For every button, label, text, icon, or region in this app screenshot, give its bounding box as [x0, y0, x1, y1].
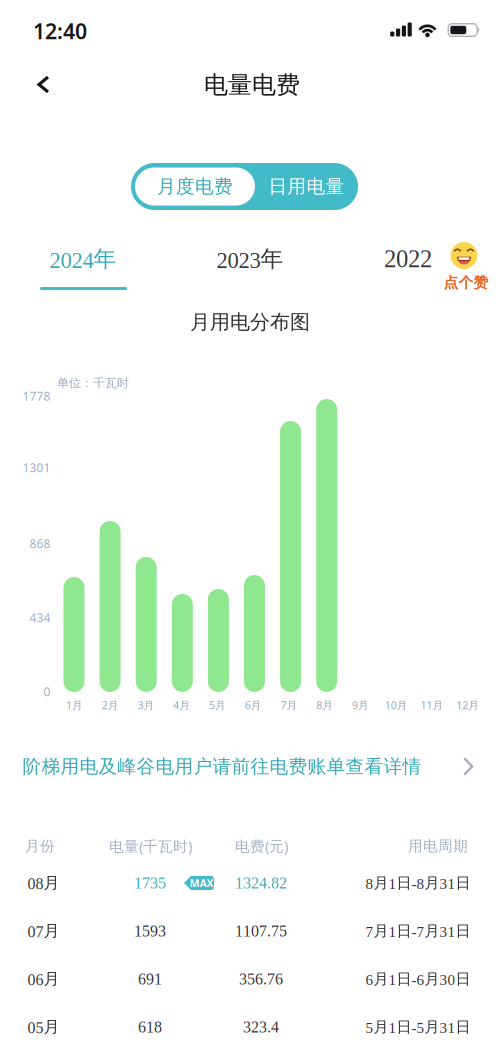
button[interactable]: 2024年 [49, 245, 116, 273]
staticText: 电费(元) [235, 836, 288, 856]
staticText: 434 [29, 609, 50, 625]
staticText: 07月 [27, 921, 59, 941]
staticText: 691 [138, 970, 162, 988]
staticText: 6月1日-6月30日 [365, 969, 470, 988]
staticText: 8月1日-8月31日 [365, 873, 470, 892]
staticText: 06月 [27, 969, 59, 989]
staticText: 点个赞 [443, 273, 488, 291]
staticText: 月度电费 [157, 175, 233, 198]
staticText: 用电周期 [408, 837, 468, 855]
staticText: 1735 [134, 874, 166, 892]
button[interactable]: 2023年 [216, 245, 283, 273]
staticText: 0 [43, 683, 50, 699]
staticText: 1593 [134, 922, 166, 940]
staticText: 3月 [137, 698, 154, 712]
staticText: 323.4 [243, 1018, 279, 1036]
staticText: 日用电量 [268, 175, 344, 198]
staticText: 868 [29, 535, 50, 551]
button[interactable] [131, 163, 358, 210]
staticText: 6月 [245, 698, 262, 712]
staticText: 月用电分布图 [190, 310, 310, 334]
staticText: 1107.75 [235, 922, 287, 940]
staticText: 356.76 [239, 970, 283, 988]
staticText: 1324.82 [235, 874, 287, 892]
button[interactable]: 月度电费 [135, 167, 255, 205]
staticText: 4月 [173, 698, 190, 712]
staticText: 1778 [22, 388, 50, 404]
staticText: 618 [138, 1018, 162, 1036]
staticText: 电量(千瓦时) [109, 836, 192, 856]
staticText: 2023年 [216, 245, 283, 273]
staticText: 5月 [209, 698, 226, 712]
staticText: 10月 [385, 698, 408, 712]
staticText: 2024年 [49, 245, 116, 273]
staticText: 8月 [316, 698, 333, 712]
staticText: 12:40 [33, 17, 87, 45]
staticText: 阶梯用电及峰谷电用户请前往电费账单查看详情 [22, 755, 421, 778]
staticText: 电量电费 [204, 70, 300, 100]
staticText: 2月 [102, 698, 119, 712]
staticText: 1月 [66, 698, 83, 712]
staticText: 单位：千瓦时 [57, 376, 129, 390]
staticText: 9月 [352, 698, 369, 712]
staticText: 2022 [384, 245, 432, 273]
staticText: 月份 [25, 837, 55, 855]
staticText: 7月1日-7月31日 [365, 921, 470, 940]
staticText: 1301 [22, 459, 50, 475]
staticText: 11月 [420, 698, 443, 712]
staticText: 7月 [280, 698, 297, 712]
button[interactable]: 2022 [384, 245, 432, 273]
button[interactable]: 阶梯用电及峰谷电用户请前往电费账单查看详情 [0, 740, 500, 792]
staticText: 05月 [27, 1017, 59, 1037]
staticText: MAX [189, 876, 213, 890]
staticText: 12月 [456, 698, 479, 712]
staticText: 5月1日-5月31日 [365, 1017, 470, 1036]
staticText: 08月 [27, 873, 59, 893]
button[interactable] [36, 75, 50, 94]
